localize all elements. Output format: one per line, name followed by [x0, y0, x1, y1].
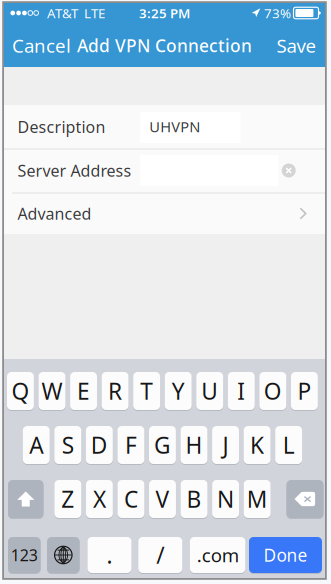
button[interactable]: B: [181, 480, 207, 518]
button[interactable]: Advanced: [4, 193, 325, 234]
button[interactable]: G: [149, 426, 176, 464]
button[interactable]: Server Address: [4, 149, 325, 192]
staticText: LTE: [84, 4, 105, 22]
button[interactable]: Shift: [8, 480, 43, 518]
button[interactable]: T: [133, 372, 160, 410]
staticText: W: [41, 376, 62, 406]
staticText: D: [91, 430, 108, 460]
staticText: Y: [172, 376, 185, 406]
staticText: Server Address: [17, 160, 131, 181]
button[interactable]: Next keyboard: [47, 537, 80, 573]
staticText: 123: [11, 544, 38, 566]
button[interactable]: J: [212, 426, 239, 464]
button[interactable]: Y: [165, 372, 192, 410]
staticText: N: [217, 484, 234, 514]
staticText: J: [223, 430, 229, 460]
button[interactable]: M: [244, 480, 271, 518]
staticText: Q: [11, 376, 29, 406]
button[interactable]: Clear text: [276, 157, 302, 183]
staticText: F: [125, 430, 137, 460]
button[interactable]: L: [275, 426, 302, 464]
staticText: 73%: [264, 4, 291, 22]
button[interactable]: E: [70, 372, 97, 410]
staticText: E: [77, 376, 90, 406]
staticText: B: [186, 484, 201, 514]
button[interactable]: W: [38, 372, 65, 410]
staticText: R: [108, 376, 122, 406]
staticText: Advanced: [17, 203, 91, 224]
button[interactable]: H: [181, 426, 207, 464]
staticText: AT&T: [47, 4, 78, 22]
staticText: Save: [276, 33, 316, 58]
button[interactable]: O: [259, 372, 286, 410]
button[interactable]: R: [102, 372, 129, 410]
staticText: S: [62, 430, 74, 460]
staticText: O: [264, 376, 282, 406]
button[interactable]: P: [291, 372, 318, 410]
button[interactable]: .: [87, 537, 131, 573]
button[interactable]: Description: [4, 105, 325, 149]
staticText: Done: [263, 543, 307, 566]
button[interactable]: N: [212, 480, 239, 518]
button[interactable]: C: [117, 480, 144, 518]
staticText: X: [93, 484, 106, 514]
button[interactable]: V: [149, 480, 176, 518]
staticText: .com: [197, 543, 239, 567]
staticText: UHVPN: [149, 117, 200, 136]
staticText: C: [124, 484, 138, 514]
button[interactable]: .com: [190, 537, 245, 573]
button[interactable]: I: [228, 372, 255, 410]
button[interactable]: 123: [8, 537, 41, 573]
staticText: M: [247, 484, 268, 514]
staticText: H: [185, 430, 202, 460]
button[interactable]: Save: [268, 23, 324, 67]
staticText: .: [106, 540, 112, 570]
staticText: A: [29, 430, 43, 460]
staticText: Cancel: [12, 33, 71, 58]
staticText: 3:25 PM: [139, 4, 190, 22]
staticText: T: [140, 376, 153, 406]
button[interactable]: /: [138, 537, 182, 573]
button[interactable]: U: [196, 372, 223, 410]
button[interactable]: Delete: [286, 480, 323, 518]
button[interactable]: Z: [54, 480, 81, 518]
button[interactable]: X: [86, 480, 113, 518]
staticText: I: [237, 376, 245, 406]
button[interactable]: D: [86, 426, 113, 464]
button[interactable]: S: [54, 426, 81, 464]
button[interactable]: Done: [249, 537, 322, 573]
staticText: Add VPN Connection: [77, 34, 252, 57]
button[interactable]: A: [23, 426, 50, 464]
staticText: U: [201, 376, 218, 406]
staticText: Description: [17, 116, 105, 137]
button[interactable]: K: [244, 426, 271, 464]
staticText: Z: [61, 484, 74, 514]
staticText: /: [156, 540, 164, 570]
staticText: L: [283, 430, 295, 460]
button[interactable]: Q: [7, 372, 34, 410]
staticText: P: [297, 376, 311, 406]
button[interactable]: F: [117, 426, 144, 464]
staticText: K: [250, 430, 264, 460]
staticText: G: [154, 430, 171, 460]
button[interactable]: Cancel: [6, 23, 76, 67]
staticText: V: [155, 484, 169, 514]
